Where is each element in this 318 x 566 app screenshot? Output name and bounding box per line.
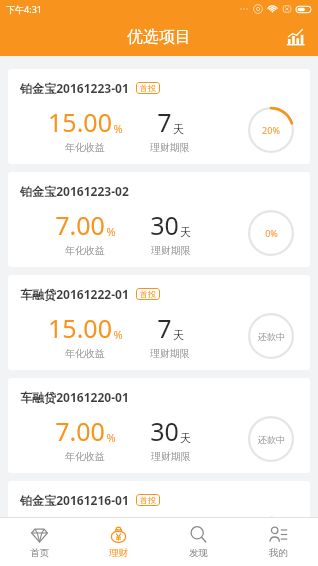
button[interactable]: 首页 xyxy=(0,518,79,566)
staticText: 理财期限 xyxy=(150,347,190,360)
staticText: 理财期限 xyxy=(151,450,191,463)
staticText: 车融贷20161220-01 xyxy=(20,389,129,405)
staticText: 天 xyxy=(173,328,184,342)
staticText: 0% xyxy=(265,227,278,239)
staticText: 15.00 xyxy=(48,105,112,139)
button[interactable]: 车融贷20161222-01 xyxy=(8,275,310,370)
staticText: 15.00 xyxy=(48,517,112,551)
staticText: 我的 xyxy=(269,547,288,559)
staticText: 7 xyxy=(157,105,172,139)
staticText: 首页 xyxy=(30,547,49,559)
staticText: % xyxy=(106,224,116,239)
staticText: 车融贷20161222-01 xyxy=(20,286,129,302)
staticText: % xyxy=(106,430,116,445)
button[interactable]: 车融贷20161220-01 xyxy=(8,378,310,473)
staticText: 理财期限 xyxy=(150,553,190,556)
staticText: 铂金宝20161223-02 xyxy=(20,183,129,199)
staticText: 首投 xyxy=(140,495,156,505)
staticText: 年化收益 xyxy=(65,141,105,154)
staticText: 年化收益 xyxy=(65,347,105,360)
staticText: % xyxy=(113,327,123,342)
button[interactable]: 铂金宝20161223-02 xyxy=(8,172,310,267)
staticText: 还款中 xyxy=(258,434,285,445)
button[interactable]: 统计图表 xyxy=(280,22,310,52)
button[interactable]: 铂金宝20161223-01 xyxy=(8,69,310,164)
staticText: 理财 xyxy=(109,547,128,559)
staticText: 优选项目 xyxy=(127,27,191,47)
staticText: 7 xyxy=(157,311,172,345)
staticText: 20% xyxy=(262,531,280,543)
staticText: 7.00 xyxy=(55,208,105,242)
staticText: % xyxy=(113,121,123,136)
staticText: 天 xyxy=(180,431,191,445)
staticText: 理财期限 xyxy=(151,244,191,257)
staticText: 7 xyxy=(157,517,172,551)
staticText: 天 xyxy=(173,122,184,136)
staticText: 首投 xyxy=(140,289,156,299)
button[interactable]: 理财 xyxy=(79,518,158,566)
staticText: 理财期限 xyxy=(150,141,190,154)
staticText: 15.00 xyxy=(48,311,112,345)
staticText: 下午4:31 xyxy=(6,3,42,15)
staticText: 30 xyxy=(150,208,179,242)
staticText: 首投 xyxy=(140,83,156,93)
staticText: 天 xyxy=(180,225,191,239)
staticText: 铂金宝20161216-01 xyxy=(20,492,129,508)
staticText: 年化收益 xyxy=(65,450,105,463)
staticText: 还款中 xyxy=(258,331,285,342)
staticText: 发现 xyxy=(189,547,208,559)
staticText: 年化收益 xyxy=(65,244,105,257)
staticText: 30 xyxy=(150,414,179,448)
staticText: 20% xyxy=(262,124,280,136)
staticText: 铂金宝20161223-01 xyxy=(20,80,129,96)
button[interactable]: 发现 xyxy=(158,518,238,566)
staticText: % xyxy=(113,533,123,548)
button[interactable]: 我的 xyxy=(238,518,318,566)
staticText: 7.00 xyxy=(55,414,105,448)
button[interactable]: 铂金宝20161216-01 xyxy=(8,481,310,566)
